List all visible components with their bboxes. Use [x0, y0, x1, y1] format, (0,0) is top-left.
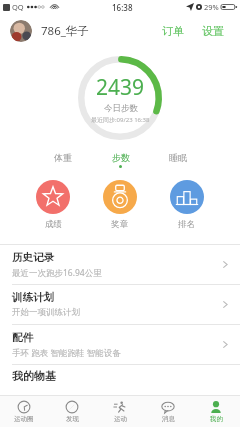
- staticText: 我的: [210, 415, 223, 423]
- button[interactable]: 消息: [144, 396, 192, 427]
- staticText: 786_华子: [41, 23, 89, 39]
- button[interactable]: 成绩: [20, 180, 86, 230]
- staticText: 配件: [12, 331, 33, 344]
- staticText: 成绩: [45, 219, 62, 230]
- staticText: 设置: [202, 24, 224, 38]
- staticText: 开始一项训练计划: [12, 307, 80, 318]
- staticText: QQ: [12, 2, 24, 12]
- button[interactable]: 睡眠: [149, 148, 206, 172]
- button[interactable]: 历史记录: [0, 245, 240, 284]
- staticText: 奖章: [111, 219, 128, 230]
- button[interactable]: 训练计划: [0, 285, 240, 324]
- button[interactable]: 运动: [96, 396, 144, 427]
- staticText: 消息: [162, 415, 175, 423]
- button[interactable]: 运动圈: [0, 396, 48, 427]
- staticText: 运动: [114, 415, 127, 423]
- button[interactable]: 排名: [153, 180, 220, 230]
- staticText: 手环 跑表 智能跑鞋 智能设备: [12, 347, 121, 359]
- button[interactable]: 配件: [0, 325, 240, 364]
- button[interactable]: 步数: [92, 148, 149, 172]
- staticText: 订单: [162, 24, 184, 38]
- staticText: 最近一次跑步16.94公里: [12, 267, 102, 279]
- button[interactable]: 设置: [196, 20, 230, 42]
- button[interactable]: 发现: [48, 396, 96, 427]
- button[interactable]: 我的: [192, 396, 240, 427]
- staticText: 发现: [66, 415, 79, 423]
- staticText: 历史记录: [12, 251, 54, 264]
- staticText: 29%: [204, 2, 219, 12]
- button[interactable]: 订单: [156, 20, 190, 42]
- staticText: 我的物基: [12, 369, 56, 383]
- staticText: 训练计划: [12, 291, 54, 304]
- button[interactable]: Profile photo: [10, 20, 32, 42]
- button[interactable]: 体重: [34, 148, 92, 172]
- staticText: 睡眠: [169, 152, 187, 163]
- button[interactable]: 奖章: [86, 180, 153, 230]
- staticText: 最近同步:09/23 16:38: [91, 116, 150, 124]
- staticText: 运动圈: [14, 415, 34, 423]
- staticText: 2439: [96, 73, 145, 102]
- staticText: 排名: [178, 219, 195, 230]
- staticText: 16:38: [112, 2, 133, 13]
- staticText: 体重: [54, 152, 72, 163]
- staticText: 步数: [112, 152, 130, 163]
- staticText: 今日步数: [104, 103, 138, 114]
